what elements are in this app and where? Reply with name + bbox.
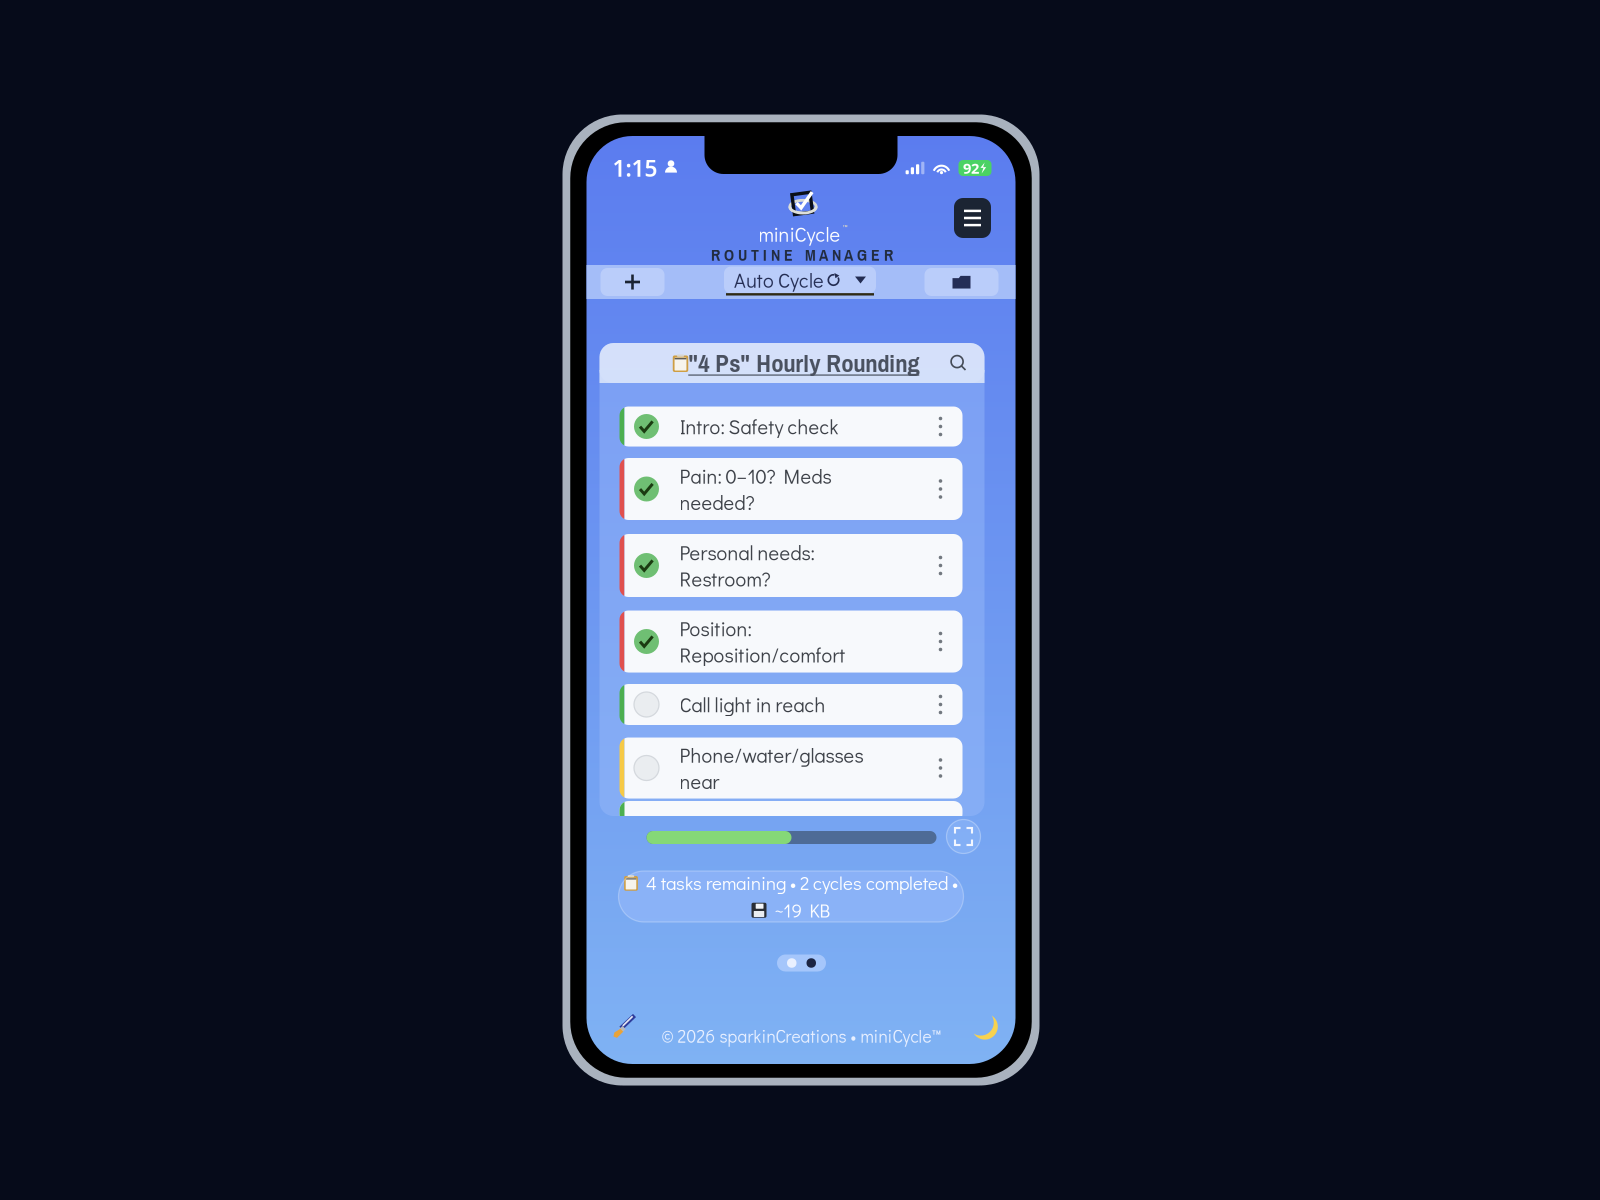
staticText: ~19 KB (766, 898, 830, 922)
button[interactable]: Personal needs: Restroom? (619, 534, 962, 597)
staticText: Position: Reposition/comfort (679, 615, 845, 668)
button[interactable]: Folders (924, 268, 998, 296)
staticText: © 2026 sparkinCreations • miniCycle™ (661, 1025, 941, 1047)
staticText: 1:15 (612, 153, 657, 183)
button[interactable]: Add task (600, 268, 664, 296)
staticText: 4 tasks remaining • 2 cycles completed • (638, 870, 958, 895)
button[interactable]: Expand list (946, 819, 980, 853)
button[interactable]: Intro: Safety check (619, 406, 962, 446)
button[interactable]: Call light in reach (619, 684, 962, 725)
staticText: Auto Cycle (734, 267, 824, 293)
staticText: Intro: Safety check (679, 413, 838, 440)
staticText: "4 Ps" Hourly Rounding (688, 346, 919, 380)
staticText: ™ (842, 222, 847, 234)
button[interactable]: Pain: 0–10? Meds needed? (619, 458, 962, 520)
staticText: Call light in reach (679, 691, 825, 718)
staticText: Pain: 0–10? Meds needed? (679, 463, 831, 515)
staticText: miniCycle (758, 221, 840, 247)
staticText: Personal needs: Restroom? (679, 539, 814, 592)
button[interactable]: Menu (954, 198, 991, 238)
button[interactable]: Position: Reposition/comfort (619, 610, 962, 672)
button[interactable]: Phone/water/glasses near (619, 737, 962, 798)
staticText: 92 (963, 158, 979, 178)
staticText: R O U T I N E M A N A G E R (711, 244, 893, 266)
staticText: Phone/water/glasses near (679, 742, 863, 794)
button[interactable]: Search (944, 349, 972, 377)
button[interactable]: Auto Cycle (724, 266, 876, 297)
